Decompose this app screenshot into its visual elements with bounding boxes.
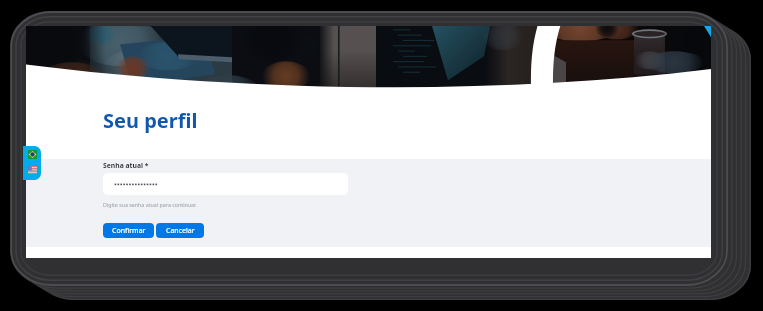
button[interactable]: Confirmar	[103, 223, 154, 238]
button[interactable]: Change language	[23, 146, 41, 180]
button[interactable]	[103, 173, 348, 195]
staticText: Digite sua senha atual para continuar.	[103, 201, 197, 208]
staticText: Cancelar	[166, 226, 195, 236]
staticText: Senha atual *	[103, 161, 149, 170]
button[interactable]: Cancelar	[156, 223, 204, 238]
staticText: Confirmar	[112, 226, 146, 236]
staticText: Seu perfil	[103, 107, 198, 134]
